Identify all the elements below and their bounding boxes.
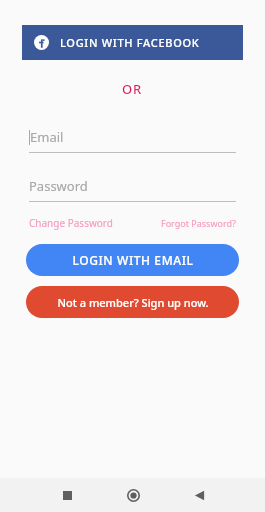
staticText: Change Password [29, 216, 113, 230]
button[interactable]: Change Password [29, 216, 113, 230]
staticText: Not a member? Sign up now. [57, 295, 209, 310]
button[interactable]: Back [179, 478, 219, 512]
staticText: Password [29, 177, 88, 195]
staticText: LOGIN WITH FACEBOOK [60, 35, 200, 50]
button[interactable]: LOGIN WITH EMAIL [26, 244, 239, 276]
button[interactable]: Recent apps [47, 478, 87, 512]
button[interactable]: Home [113, 478, 153, 512]
button[interactable]: LOGIN WITH FACEBOOK [22, 25, 243, 60]
staticText: LOGIN WITH EMAIL [72, 252, 194, 268]
button[interactable]: Not a member? Sign up now. [26, 286, 239, 318]
staticText: OR [122, 80, 143, 98]
staticText: Email [30, 128, 64, 146]
staticText: Forgot Password? [161, 217, 236, 229]
button[interactable]: Forgot Password? [161, 217, 236, 229]
